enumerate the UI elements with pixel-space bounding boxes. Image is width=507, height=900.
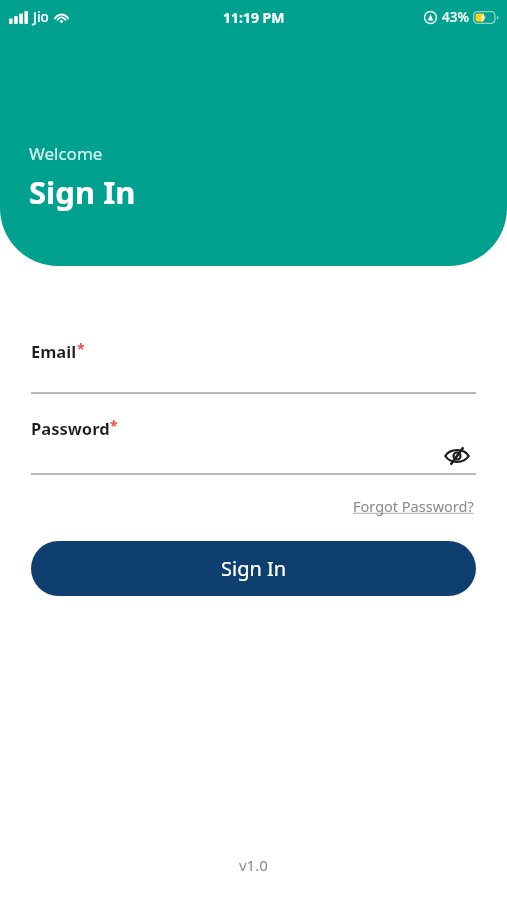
staticText: 11:19 PM bbox=[223, 8, 285, 27]
button[interactable]: Forgot Password? bbox=[351, 493, 476, 519]
button[interactable]: Sign In bbox=[31, 541, 476, 596]
staticText: Welcome bbox=[29, 142, 103, 165]
staticText: Sign In bbox=[221, 555, 287, 582]
staticText: * bbox=[77, 339, 85, 358]
staticText: 43% bbox=[442, 8, 469, 26]
staticText: Email bbox=[31, 340, 77, 362]
staticText: Sign In bbox=[29, 171, 136, 213]
staticText: Jio bbox=[33, 8, 49, 26]
button[interactable]: Show password bbox=[438, 439, 476, 473]
staticText: * bbox=[110, 416, 118, 435]
staticText: v1.0 bbox=[239, 855, 268, 875]
staticText: Password bbox=[31, 417, 110, 439]
staticText: Forgot Password? bbox=[353, 496, 474, 516]
